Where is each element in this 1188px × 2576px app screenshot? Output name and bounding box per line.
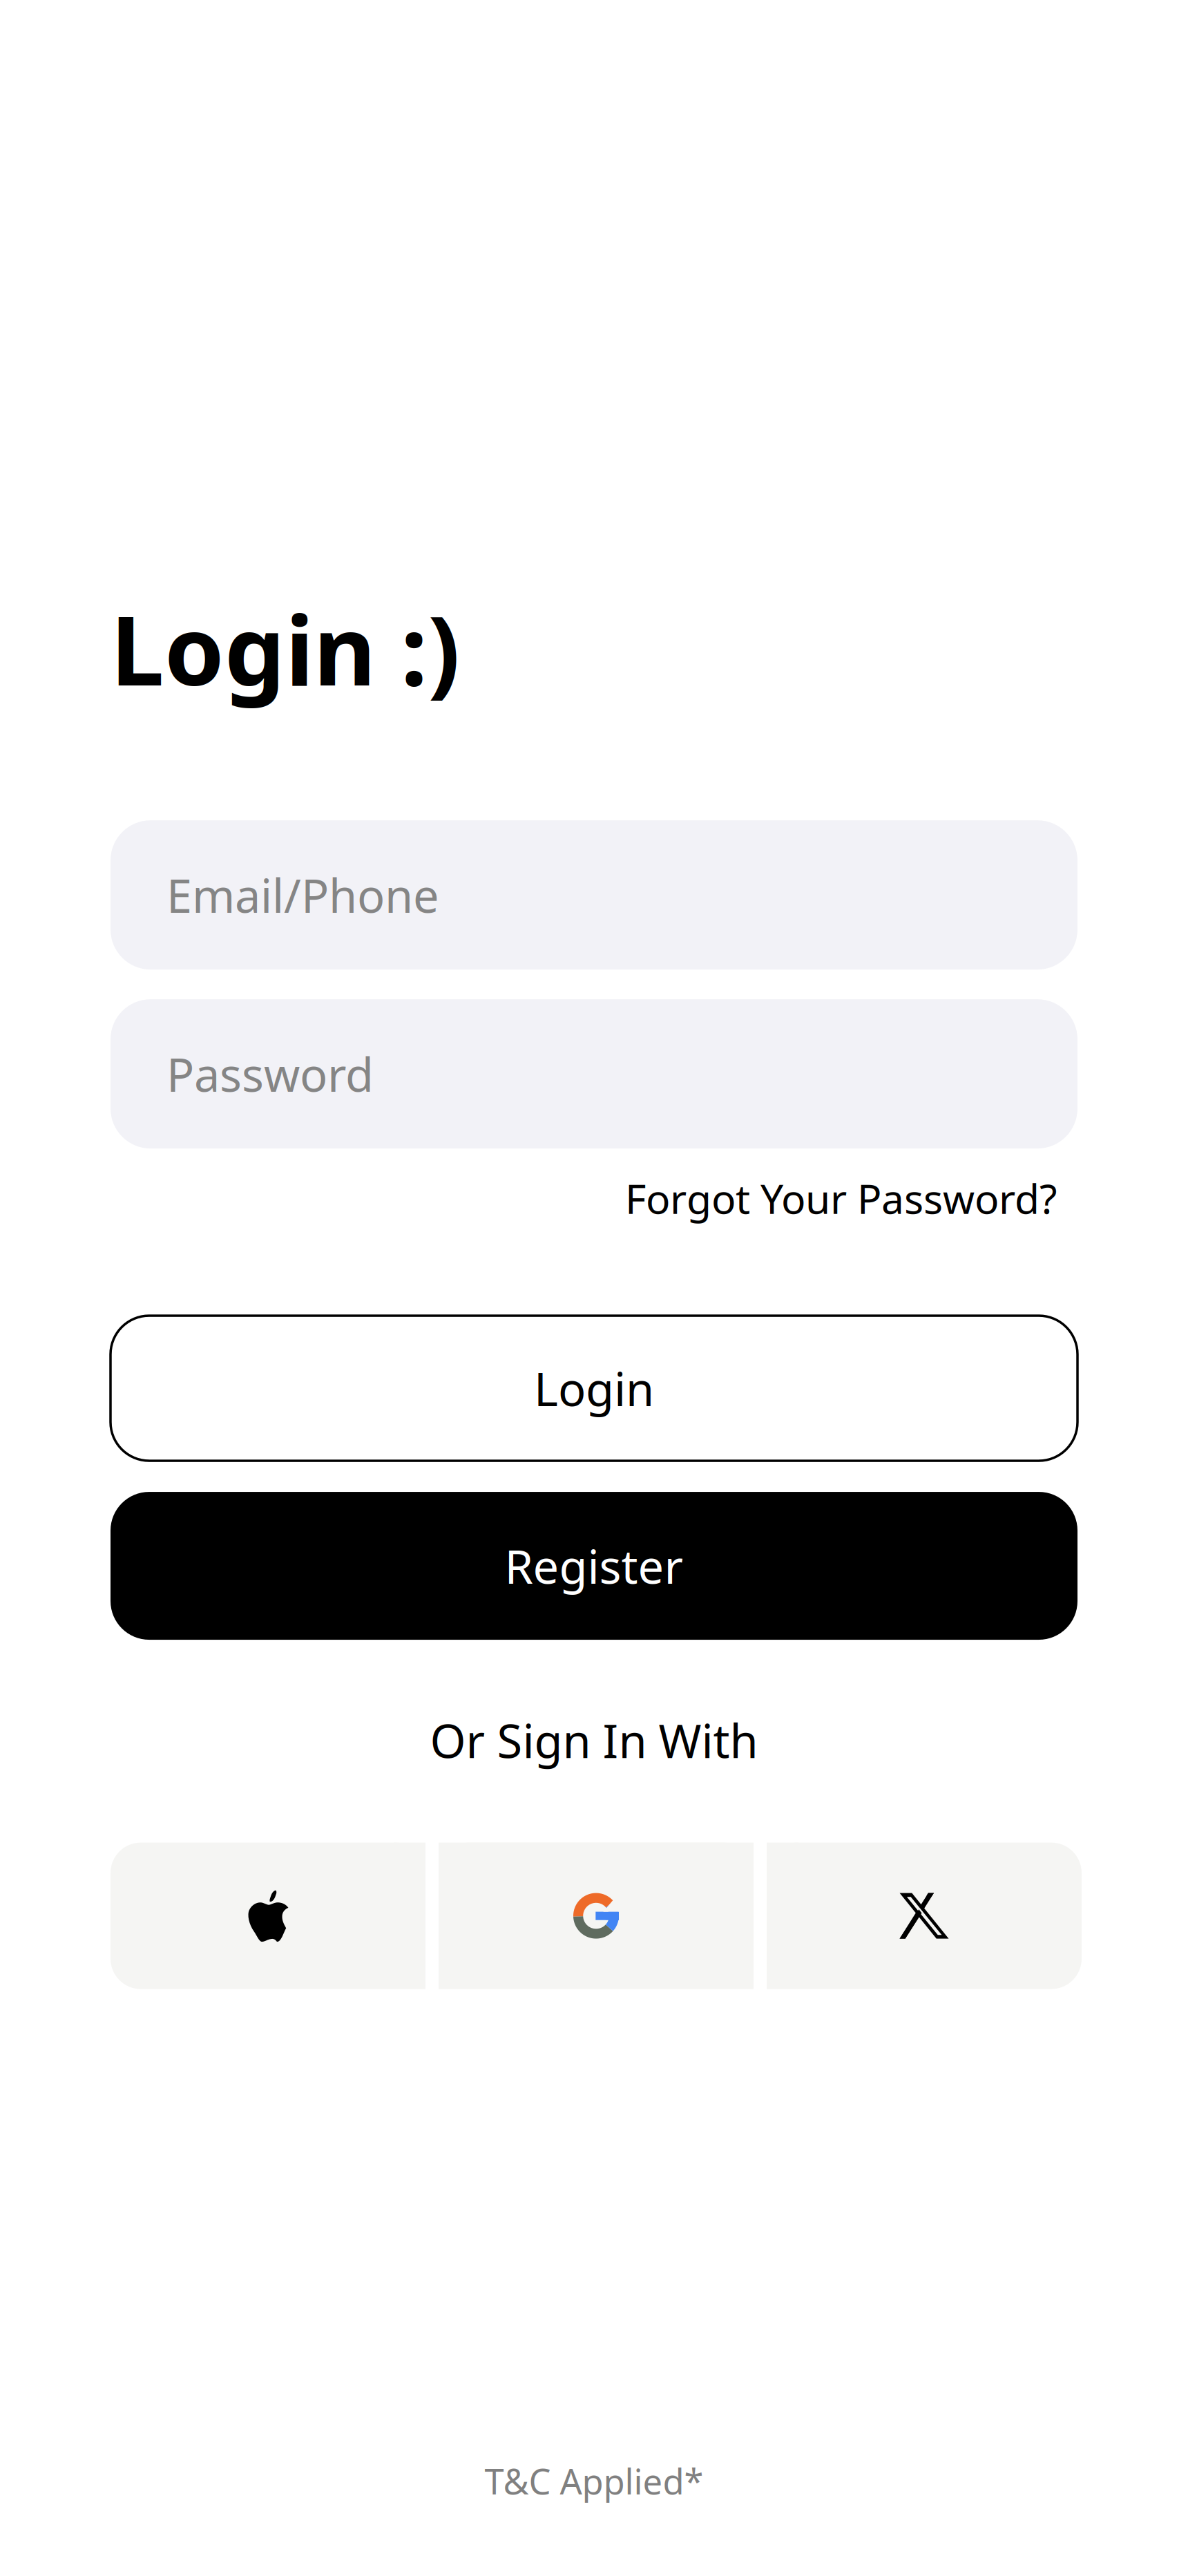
button[interactable]: Login	[111, 1316, 1077, 1461]
staticText: Login	[534, 1358, 654, 1419]
button[interactable]: Sign in with Apple	[111, 1843, 425, 1989]
staticText: Email/Phone	[166, 864, 439, 926]
staticText: T&C Applied*	[485, 2458, 703, 2504]
staticText: Forgot Your Password?	[625, 1171, 1057, 1225]
button[interactable]: Sign in with X	[767, 1843, 1082, 1989]
staticText: Login :)	[111, 585, 460, 712]
staticText: Password	[166, 1043, 374, 1104]
button[interactable]: Sign in with Google	[439, 1843, 754, 1989]
button[interactable]: Forgot Your Password?	[625, 1171, 1057, 1225]
staticText: Or Sign In With	[430, 1710, 758, 1771]
staticText: Register	[505, 1535, 683, 1596]
button[interactable]: Email/Phone	[111, 820, 1077, 970]
button[interactable]: Register	[111, 1492, 1077, 1640]
button[interactable]: Password	[111, 999, 1077, 1148]
